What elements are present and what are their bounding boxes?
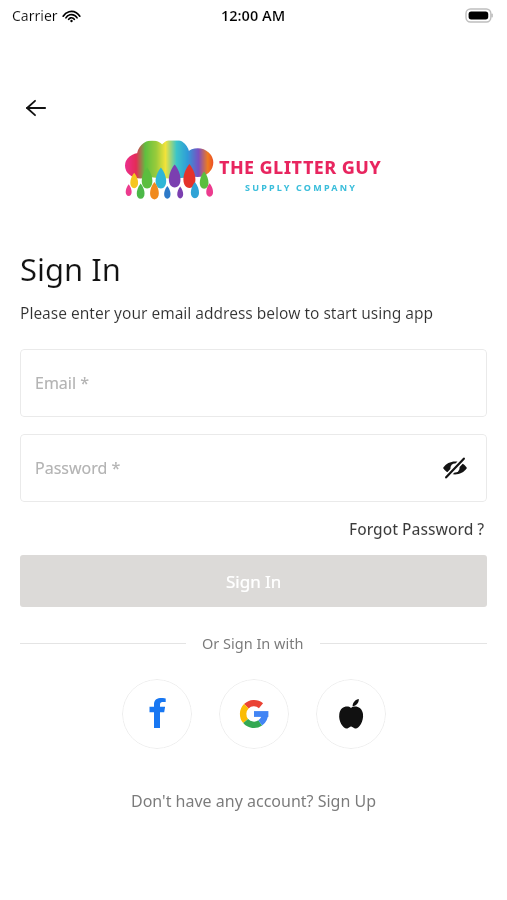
staticText: 12:00 AM	[221, 5, 286, 25]
staticText: SUPPLY COMPANY	[245, 181, 357, 193]
staticText: Or Sign In with	[202, 633, 304, 653]
button[interactable]: Sign in with Google	[219, 679, 289, 749]
button[interactable]: Don't have any account? Sign Up	[127, 787, 380, 815]
staticText: Email *	[35, 372, 90, 394]
staticText: Sign In	[20, 248, 121, 290]
button[interactable]: Sign in with Facebook	[122, 679, 192, 749]
staticText: Carrier	[12, 6, 58, 25]
staticText: Forgot Password ?	[349, 518, 485, 539]
button[interactable]: Show password	[437, 450, 473, 486]
button[interactable]: Forgot Password ?	[347, 516, 487, 541]
staticText: THE GLITTER GUY	[219, 155, 382, 180]
staticText: Please enter your email address below to…	[20, 302, 434, 323]
staticText: Sign In	[226, 570, 282, 593]
button[interactable]: Email *	[20, 349, 487, 417]
button[interactable]: Sign In	[20, 555, 487, 607]
button[interactable]: Sign in with Apple	[316, 679, 386, 749]
button[interactable]: Password *	[20, 434, 487, 502]
staticText: Don't have any account? Sign Up	[131, 790, 376, 812]
button[interactable]: Back	[14, 86, 58, 130]
staticText: Password *	[35, 457, 121, 479]
